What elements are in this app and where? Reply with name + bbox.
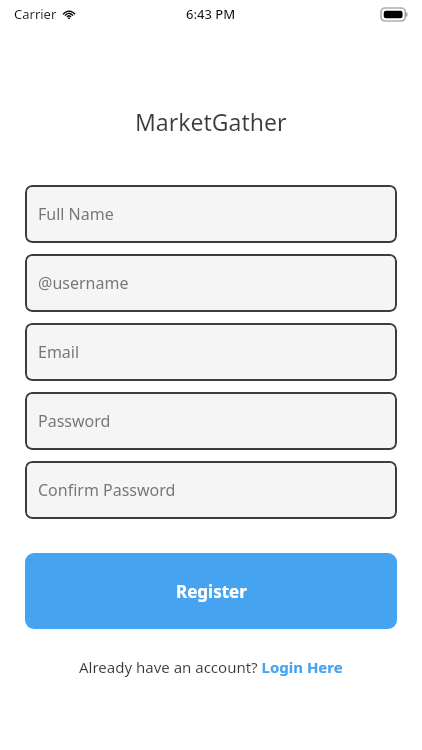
- staticText: @username: [38, 272, 129, 294]
- staticText: Already have an account? Login Here: [79, 657, 343, 677]
- button[interactable]: Full Name: [25, 185, 397, 243]
- button[interactable]: Password: [25, 392, 397, 450]
- button[interactable]: Email: [25, 323, 397, 381]
- staticText: Password: [38, 410, 111, 432]
- button[interactable]: Confirm Password: [25, 461, 397, 519]
- staticText: Full Name: [38, 203, 114, 225]
- staticText: 6:43 PM: [186, 5, 236, 23]
- button[interactable]: Register: [25, 553, 397, 629]
- staticText: Register: [176, 580, 247, 603]
- button[interactable]: Already have an account? Login Here: [75, 653, 347, 681]
- button[interactable]: @username: [25, 254, 397, 312]
- staticText: MarketGather: [135, 106, 287, 137]
- other: Wi-Fi signal: [62, 7, 76, 21]
- other: Battery full: [381, 8, 408, 21]
- staticText: Carrier: [14, 5, 57, 23]
- staticText: Confirm Password: [38, 479, 176, 501]
- staticText: Email: [38, 341, 80, 363]
